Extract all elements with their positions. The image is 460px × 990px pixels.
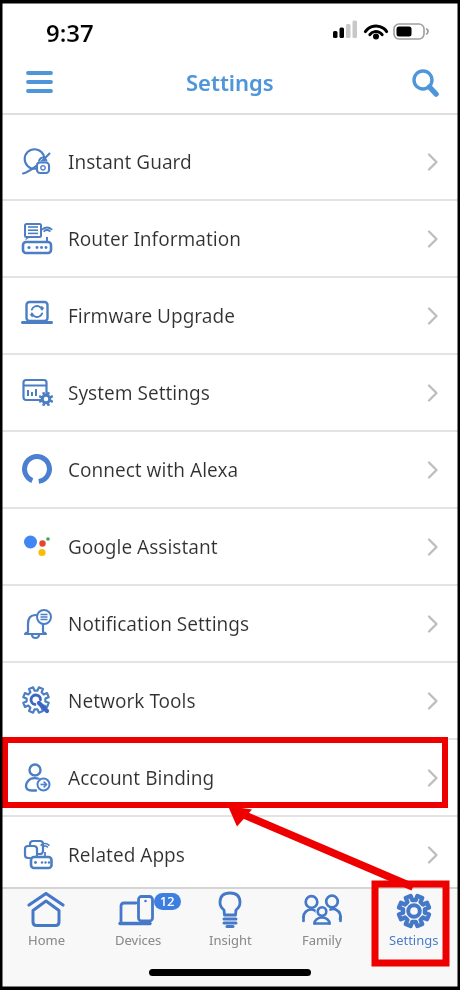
button[interactable]: Google Assistant (0, 509, 460, 586)
staticText: 9:37 (46, 16, 94, 49)
staticText: Account Binding (68, 765, 428, 791)
button[interactable]: Insight (184, 891, 276, 990)
staticText: Instant Guard (68, 149, 428, 175)
button[interactable]: Firmware Upgrade (0, 278, 460, 355)
staticText: System Settings (68, 380, 428, 406)
staticText: Notification Settings (68, 611, 428, 637)
staticText: Google Assistant (68, 534, 428, 560)
staticText: Connect with Alexa (68, 457, 428, 483)
button[interactable]: Notification Settings (0, 586, 460, 663)
button[interactable]: Related Apps (0, 817, 460, 894)
staticText: Firmware Upgrade (68, 303, 428, 329)
staticText: Router Information (68, 226, 428, 252)
button[interactable]: System Settings (0, 355, 460, 432)
staticText: Family (302, 931, 342, 949)
staticText: Insight (209, 931, 252, 949)
staticText: Home (28, 931, 65, 949)
staticText: Settings (186, 67, 274, 97)
staticText: Devices (115, 931, 162, 949)
button[interactable]: Router Information (0, 201, 460, 278)
button[interactable]: Family (276, 891, 368, 990)
button[interactable]: Network Tools (0, 663, 460, 740)
button[interactable]: Instant Guard (0, 124, 460, 201)
button[interactable]: Settings (368, 891, 460, 990)
button[interactable]: Home (0, 891, 92, 990)
staticText: Related Apps (68, 842, 428, 868)
button[interactable]: Connect with Alexa (0, 432, 460, 509)
button[interactable]: Account Binding (0, 740, 460, 817)
staticText: 12 (160, 893, 175, 910)
staticText: Network Tools (68, 688, 428, 714)
button[interactable]: Devices (92, 891, 184, 990)
button[interactable] (20, 71, 60, 99)
staticText: Settings (389, 931, 439, 949)
button[interactable] (405, 63, 449, 107)
